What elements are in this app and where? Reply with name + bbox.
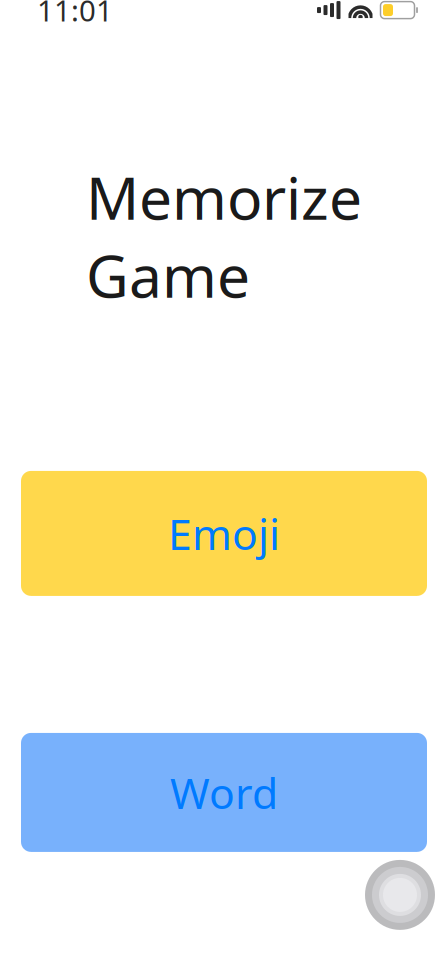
button[interactable]: AssistiveTouch <box>365 860 435 930</box>
button[interactable]: Word <box>21 733 427 852</box>
staticText: Memorize Game <box>86 158 362 314</box>
button[interactable]: Emoji <box>21 471 427 596</box>
staticText: 11:01 <box>37 0 113 30</box>
staticText: Word <box>170 764 278 821</box>
staticText: Emoji <box>168 505 280 562</box>
